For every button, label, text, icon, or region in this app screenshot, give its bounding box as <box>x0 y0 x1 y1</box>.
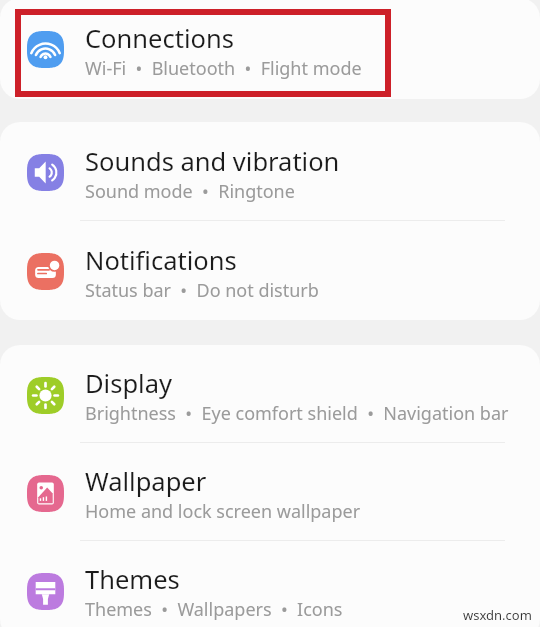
button[interactable]: Notifications <box>0 221 540 320</box>
staticText: Brightness • Eye comfort shield • Naviga… <box>85 401 509 426</box>
button[interactable]: Display <box>0 345 540 443</box>
staticText: Status bar • Do not disturb <box>85 278 319 303</box>
staticText: Connections <box>85 21 234 56</box>
staticText: Wallpaper <box>85 464 207 499</box>
button[interactable]: Connections <box>0 0 540 99</box>
staticText: Sounds and vibration <box>85 144 340 179</box>
button[interactable]: Wallpaper <box>0 443 540 541</box>
staticText: Sound mode • Ringtone <box>85 179 295 204</box>
staticText: Notifications <box>85 243 237 278</box>
button[interactable]: Themes <box>0 541 540 627</box>
button[interactable]: Sounds and vibration <box>0 122 540 221</box>
staticText: Themes <box>85 562 180 597</box>
staticText: Themes • Wallpapers • Icons <box>85 597 343 622</box>
staticText: Home and lock screen wallpaper <box>85 499 361 524</box>
staticText: Wi-Fi • Bluetooth • Flight mode <box>85 56 362 81</box>
staticText: Display <box>85 366 172 401</box>
staticText: wsxdn.com <box>463 606 532 624</box>
